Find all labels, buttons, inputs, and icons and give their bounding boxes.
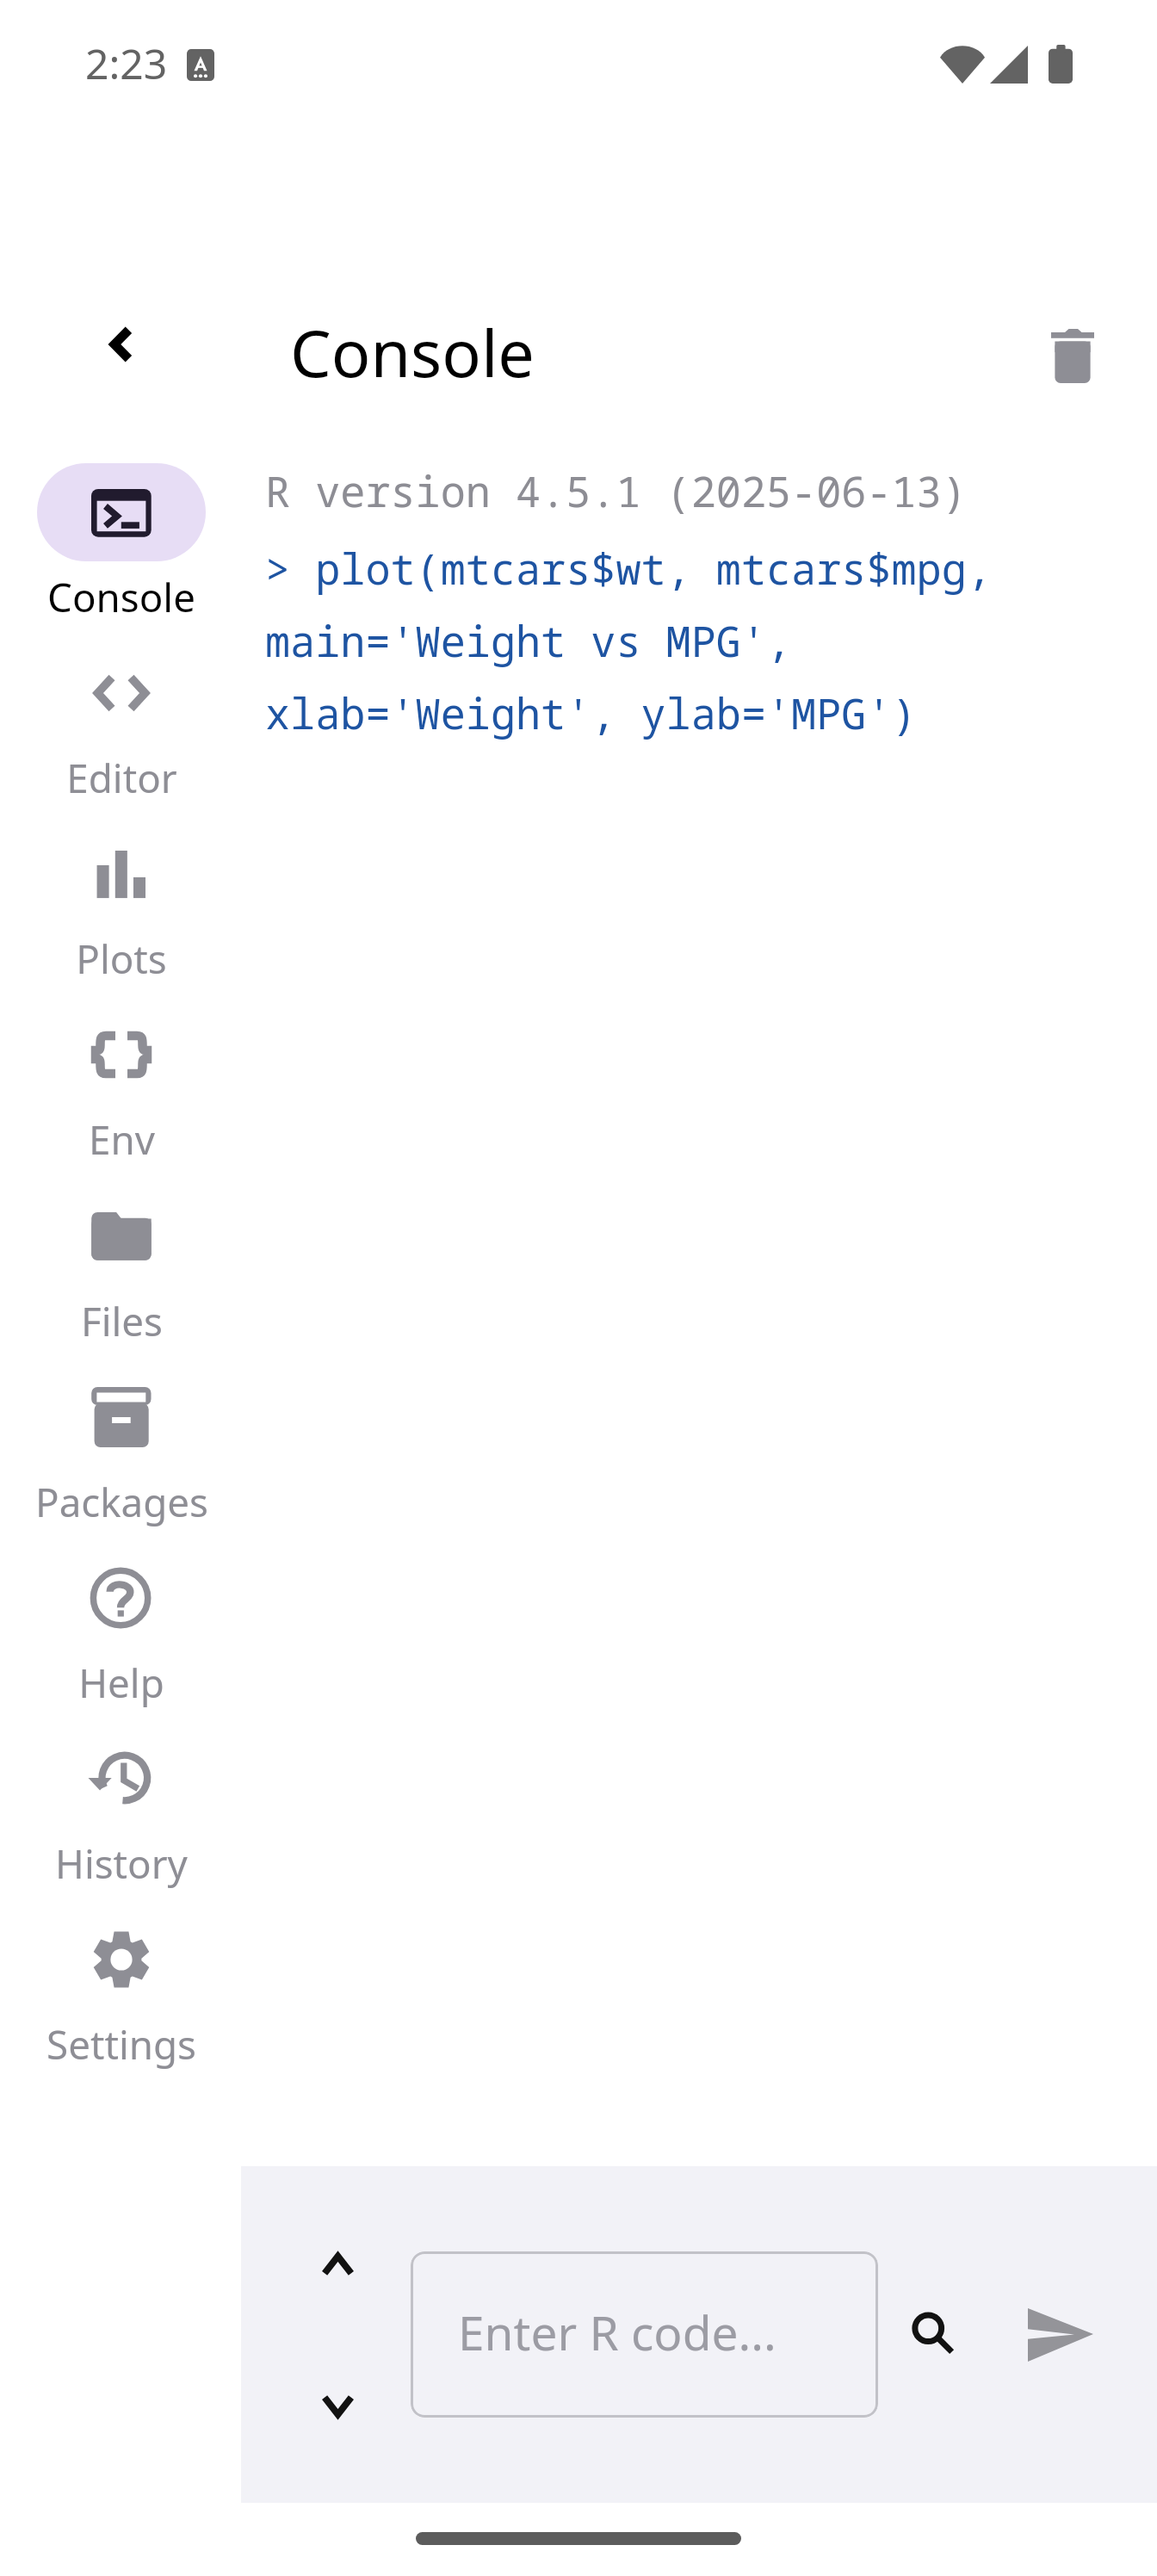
staticText: Console (290, 307, 535, 396)
button[interactable]: Plots (17, 817, 226, 988)
staticText: > plot(mtcars$wt, mtcars$mpg, main='Weig… (265, 540, 1126, 741)
button[interactable]: Previous command (286, 2213, 389, 2316)
button[interactable]: Next command (286, 2354, 389, 2457)
staticText: Help (78, 1656, 164, 1707)
staticText: Editor (66, 751, 177, 802)
button[interactable]: History (17, 1722, 226, 1892)
button[interactable]: Search (882, 2282, 985, 2385)
button[interactable]: Help (17, 1541, 226, 1712)
button[interactable]: Clear console (1021, 304, 1124, 407)
button[interactable]: Back (70, 293, 173, 396)
staticText: R version 4.5.1 (2025-06-13) (265, 462, 967, 519)
staticText: Settings (46, 2017, 196, 2069)
button[interactable]: Env (17, 998, 226, 1168)
staticText: Console (47, 570, 195, 622)
button[interactable]: Console (17, 455, 226, 626)
staticText: Packages (35, 1475, 208, 1526)
staticText: Files (81, 1294, 163, 1346)
button[interactable]: Files (17, 1180, 226, 1350)
staticText: Env (89, 1112, 155, 1164)
staticText: Plots (76, 932, 167, 983)
staticText: Enter R code... (458, 2300, 776, 2364)
button[interactable]: Enter R code... (411, 2251, 878, 2418)
button[interactable]: Editor (17, 636, 226, 807)
staticText: History (55, 1836, 188, 1888)
button[interactable]: Send (1009, 2283, 1112, 2387)
staticText: 2:23 (85, 35, 168, 91)
button[interactable]: Settings (17, 1903, 226, 2073)
button[interactable]: Packages (17, 1360, 226, 1531)
